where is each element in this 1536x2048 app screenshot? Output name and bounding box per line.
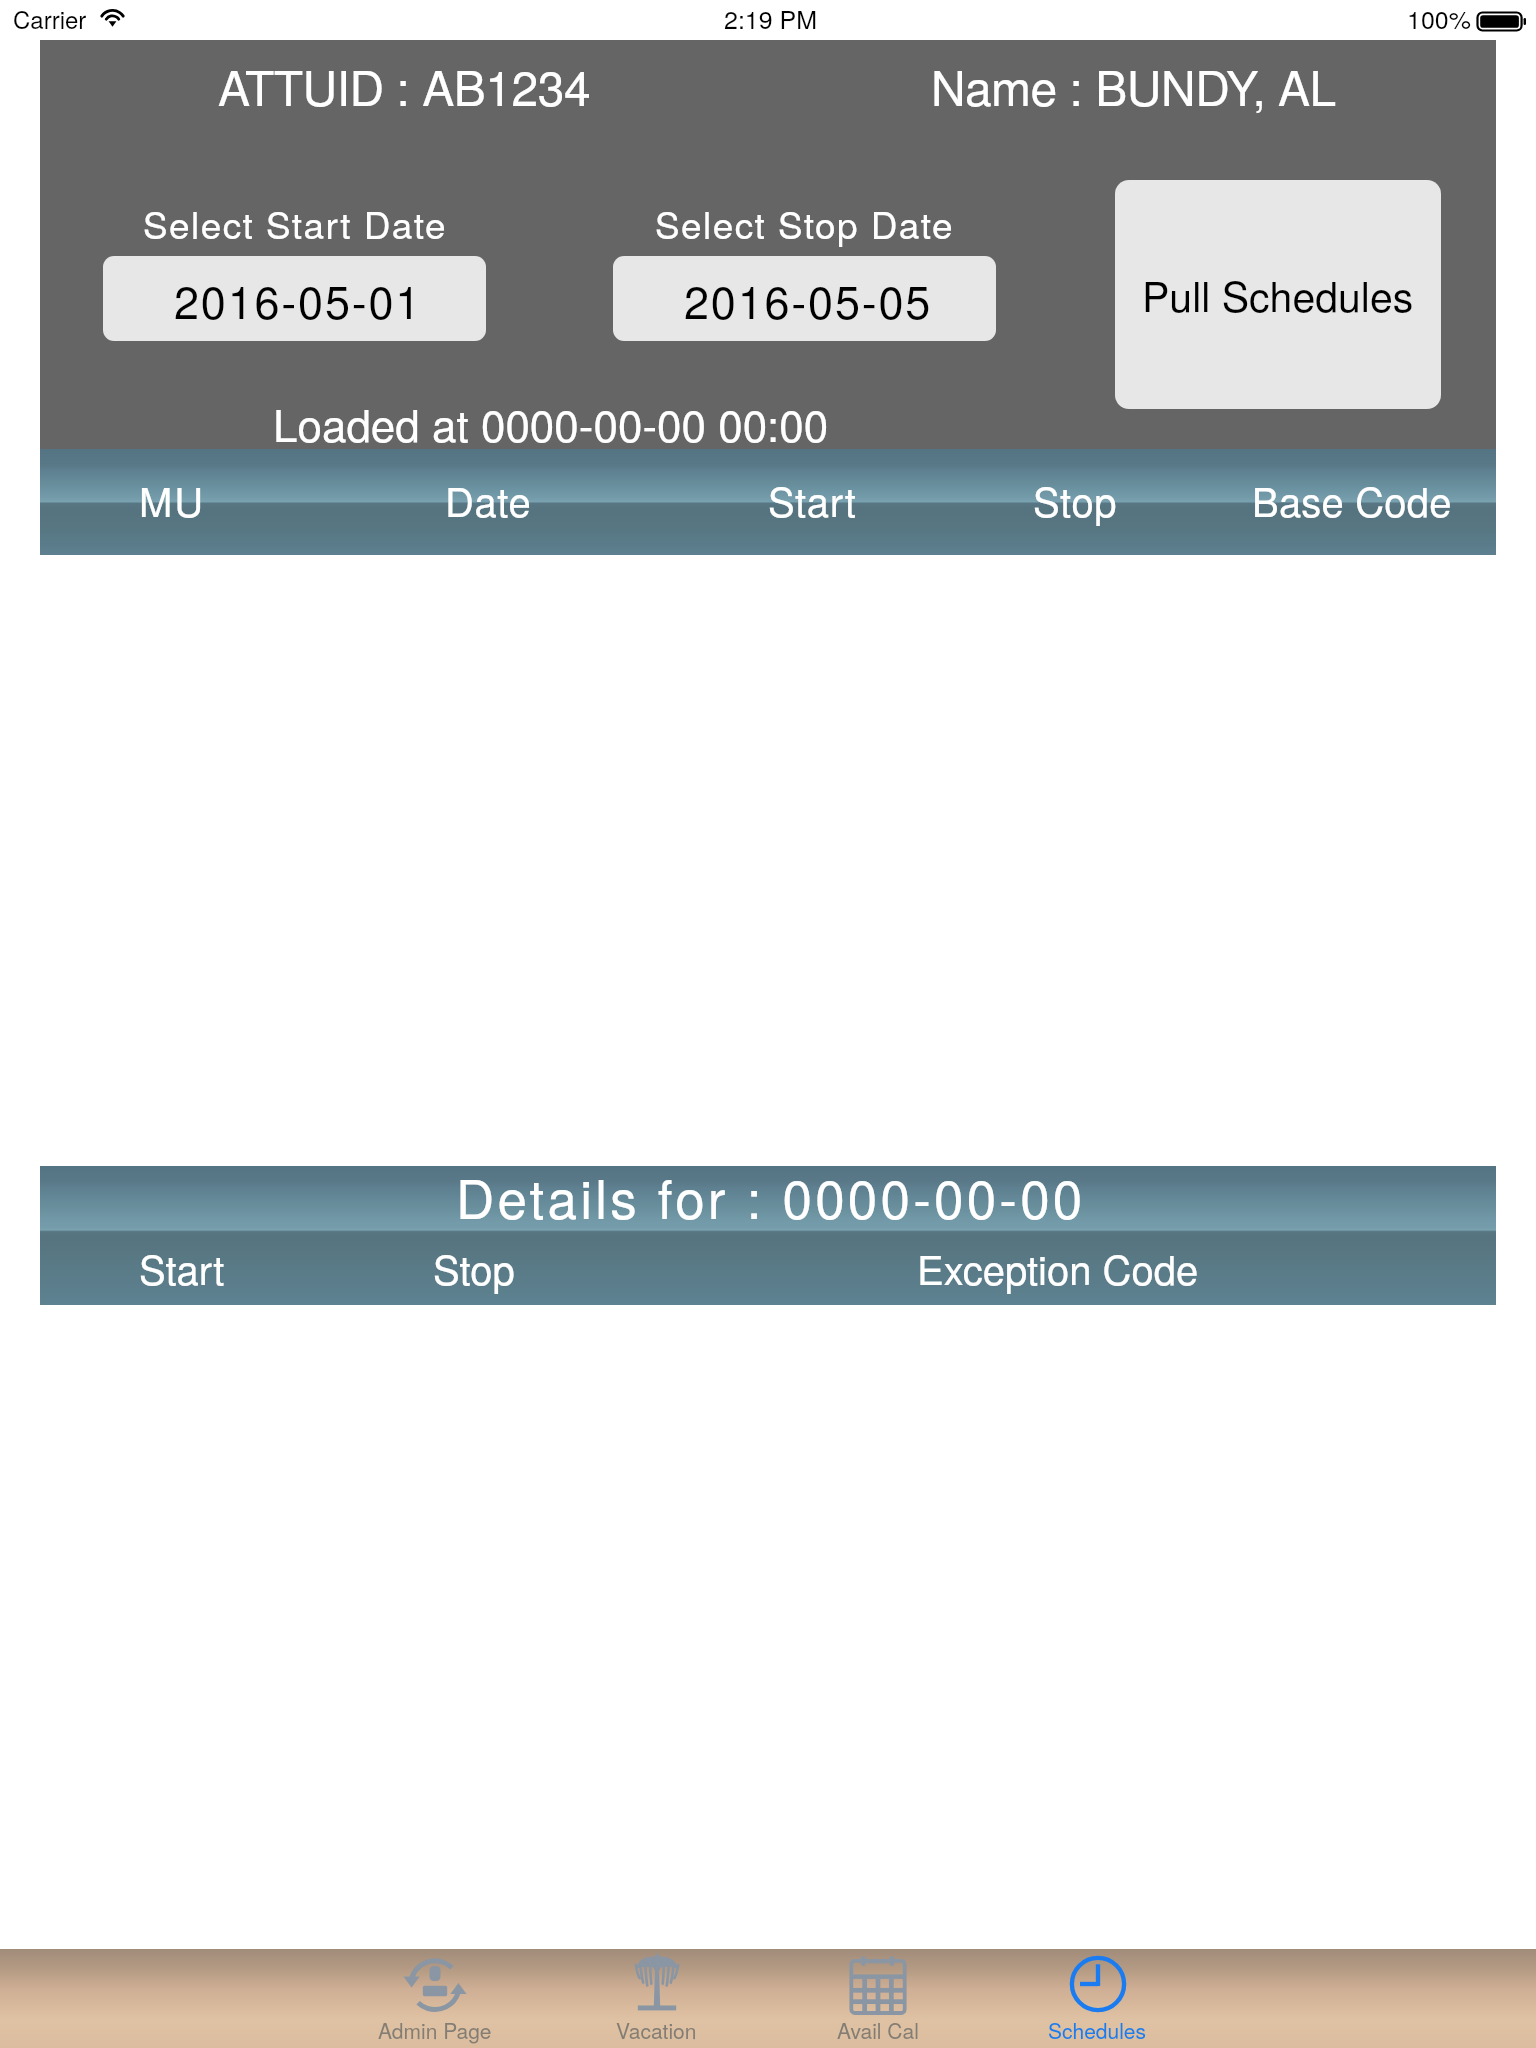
button[interactable]: Avail Cal [778, 1949, 978, 2048]
staticText: Start [139, 1239, 225, 1296]
staticText: Stop [1033, 471, 1118, 528]
staticText: Base Code [1252, 471, 1452, 528]
staticText: Select Stop Date [655, 197, 954, 250]
staticText: Stop [433, 1239, 515, 1296]
button[interactable]: Admin Page [335, 1949, 535, 2048]
staticText: Name : BUNDY, AL [931, 51, 1336, 120]
staticText: 2016-05-05 [684, 267, 933, 331]
staticText: Start [768, 471, 857, 528]
staticText: Vacation [616, 2015, 697, 2045]
staticText: Schedules [1048, 2015, 1147, 2045]
button[interactable]: Vacation [556, 1949, 756, 2048]
button[interactable]: Pull Schedules [1115, 180, 1441, 409]
staticText: 100% [1407, 0, 1471, 36]
staticText: 2:19 PM [724, 0, 818, 36]
staticText: Date [445, 471, 532, 528]
staticText: Admin Page [378, 2015, 492, 2045]
staticText: Pull Schedules [1142, 265, 1414, 324]
button[interactable]: Schedules [997, 1949, 1197, 2048]
staticText: Carrier [13, 1, 87, 35]
button[interactable]: 2016-05-05 [613, 256, 996, 341]
staticText: Loaded at 0000-00-00 00:00 [273, 391, 829, 454]
staticText: MU [139, 471, 206, 528]
staticText: ATTUID : AB1234 [218, 51, 591, 120]
staticText: 2016-05-01 [174, 267, 423, 331]
staticText: Select Start Date [143, 197, 447, 250]
staticText: Exception Code [917, 1239, 1199, 1296]
button[interactable]: 2016-05-01 [103, 256, 486, 341]
other: Wi-Fi signal [99, 5, 126, 25]
staticText: Avail Cal [837, 2015, 919, 2045]
other: Battery full [1477, 12, 1526, 31]
staticText: Details for : 0000-00-00 [456, 1158, 1086, 1231]
